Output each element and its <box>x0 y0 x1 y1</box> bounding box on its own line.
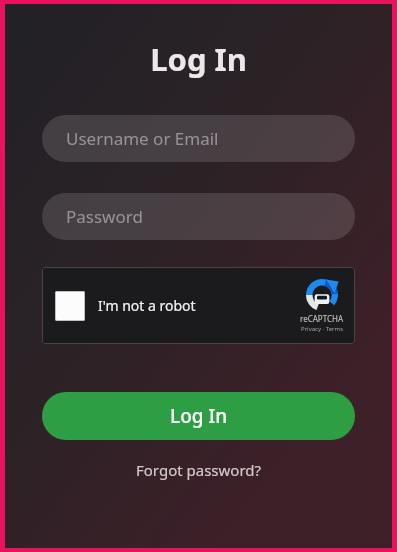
staticText: Password <box>66 205 143 228</box>
button[interactable]: I'm not a robot checkbox <box>55 291 85 321</box>
staticText: Privacy · Terms <box>301 325 344 333</box>
other: reCAPTCHA logo <box>306 279 338 311</box>
staticText: reCAPTCHA <box>300 313 344 324</box>
button[interactable]: Username or Email <box>42 115 355 162</box>
button[interactable]: Password <box>42 193 355 240</box>
staticText: I'm not a robot <box>98 296 196 315</box>
button[interactable]: Log In <box>42 392 355 440</box>
staticText: Forgot password? <box>136 460 262 480</box>
staticText: Username or Email <box>66 127 219 150</box>
button[interactable]: Forgot password? <box>130 457 268 483</box>
staticText: Log In <box>170 403 228 429</box>
staticText: Log In <box>150 38 247 80</box>
